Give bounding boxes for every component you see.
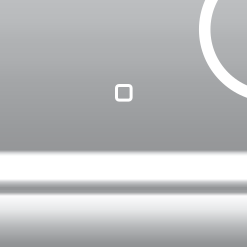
button[interactable]: Stop <box>109 78 138 107</box>
button[interactable]: Now playing <box>0 150 247 187</box>
button[interactable]: Up next <box>0 190 247 247</box>
